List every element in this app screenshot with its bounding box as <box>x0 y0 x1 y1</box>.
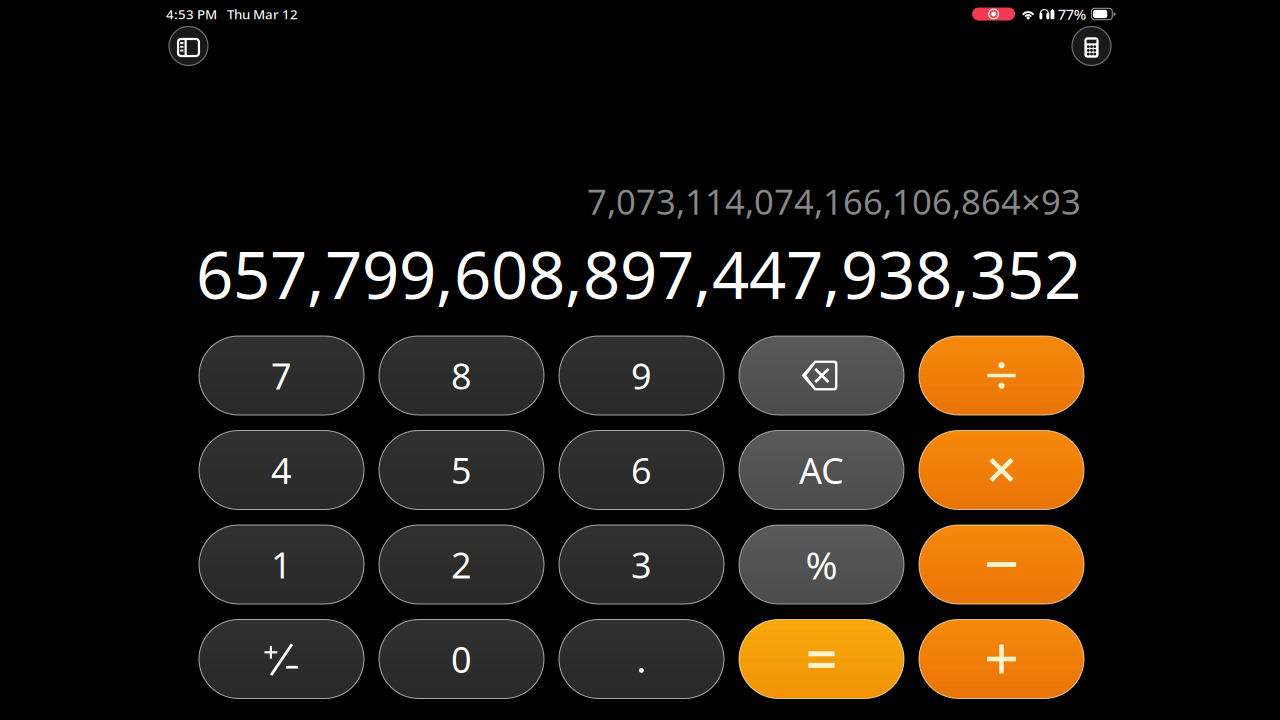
staticText: 7 <box>271 352 292 399</box>
staticText: 9 <box>631 352 652 399</box>
staticText: AC <box>799 446 844 494</box>
staticText: 2 <box>451 541 472 588</box>
button[interactable]: Show history sidebar <box>169 26 208 65</box>
staticText: 0 <box>451 635 472 683</box>
staticText: 657,799,608,897,447,938,352 <box>196 230 1081 317</box>
staticText: 7,073,114,074,166,106,864×93 <box>587 178 1081 224</box>
button[interactable]: 8 <box>379 336 544 415</box>
button[interactable]: Decimal point <box>559 619 724 698</box>
staticText: 4:53 PM <box>166 5 217 23</box>
button[interactable]: 6 <box>559 430 724 509</box>
button[interactable]: Add <box>919 619 1084 698</box>
staticText: 1 <box>271 541 292 588</box>
button[interactable]: 3 <box>559 525 724 604</box>
staticText: Thu Mar 12 <box>227 5 298 23</box>
button[interactable]: 9 <box>559 336 724 415</box>
button[interactable]: Calculator mode <box>1072 26 1111 65</box>
button[interactable]: Equals <box>739 619 904 698</box>
button[interactable]: 4 <box>199 430 364 509</box>
button[interactable]: 2 <box>379 525 544 604</box>
staticText: 5 <box>451 446 472 494</box>
button[interactable]: Multiply <box>919 430 1084 509</box>
button[interactable]: 5 <box>379 430 544 509</box>
button[interactable]: 7 <box>199 336 364 415</box>
staticText: 4 <box>271 446 292 494</box>
button[interactable]: AC <box>739 430 904 509</box>
button[interactable]: Delete <box>739 336 904 415</box>
button[interactable]: Divide <box>919 336 1084 415</box>
staticText: 3 <box>631 541 652 588</box>
staticText: 8 <box>451 352 472 399</box>
button[interactable]: % <box>739 525 904 604</box>
staticText: % <box>805 539 837 590</box>
button[interactable]: 0 <box>379 619 544 698</box>
button[interactable]: Subtract <box>919 525 1084 604</box>
staticText: 77% <box>1058 4 1086 24</box>
button[interactable]: 1 <box>199 525 364 604</box>
staticText: 6 <box>631 446 652 494</box>
button[interactable]: Toggle sign <box>199 619 364 698</box>
